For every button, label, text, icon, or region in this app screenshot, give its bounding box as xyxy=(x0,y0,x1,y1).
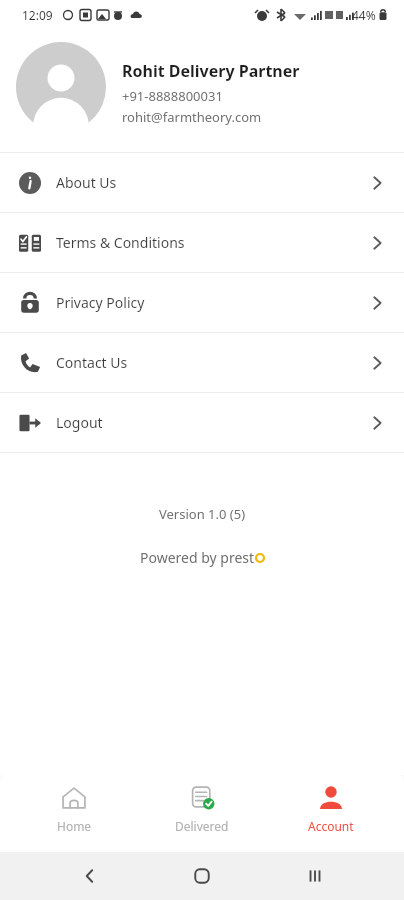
button[interactable]: Recent apps xyxy=(292,853,338,899)
staticText: Contact Us xyxy=(56,353,128,372)
staticText: Version 1.0 (5) xyxy=(0,505,404,523)
staticText: +91-8888800031 xyxy=(122,87,223,105)
button[interactable]: Home xyxy=(179,853,225,899)
button[interactable]: Home xyxy=(19,776,129,842)
button[interactable]: Contact Us xyxy=(0,333,404,392)
button[interactable]: Terms & Conditions xyxy=(0,213,404,272)
staticText: rohit@farmtheory.com xyxy=(122,108,262,126)
staticText: Account xyxy=(308,818,354,834)
staticText: Home xyxy=(57,818,92,834)
button[interactable]: Back xyxy=(67,853,113,899)
staticText: Rohit Delivery Partner xyxy=(122,60,300,82)
staticText: Logout xyxy=(56,413,103,432)
staticText: 12:09 xyxy=(22,7,53,23)
button[interactable]: Delivered xyxy=(147,776,257,842)
staticText: About Us xyxy=(56,173,117,192)
staticText: Privacy Policy xyxy=(56,293,145,312)
staticText: Powered by prest xyxy=(140,548,255,567)
button[interactable]: Logout xyxy=(0,393,404,452)
staticText: Delivered xyxy=(175,818,229,834)
button[interactable]: About Us xyxy=(0,153,404,212)
staticText: 44% xyxy=(352,7,376,23)
button[interactable]: Account xyxy=(276,776,386,842)
staticText: Terms & Conditions xyxy=(56,233,185,252)
button[interactable]: Privacy Policy xyxy=(0,273,404,332)
